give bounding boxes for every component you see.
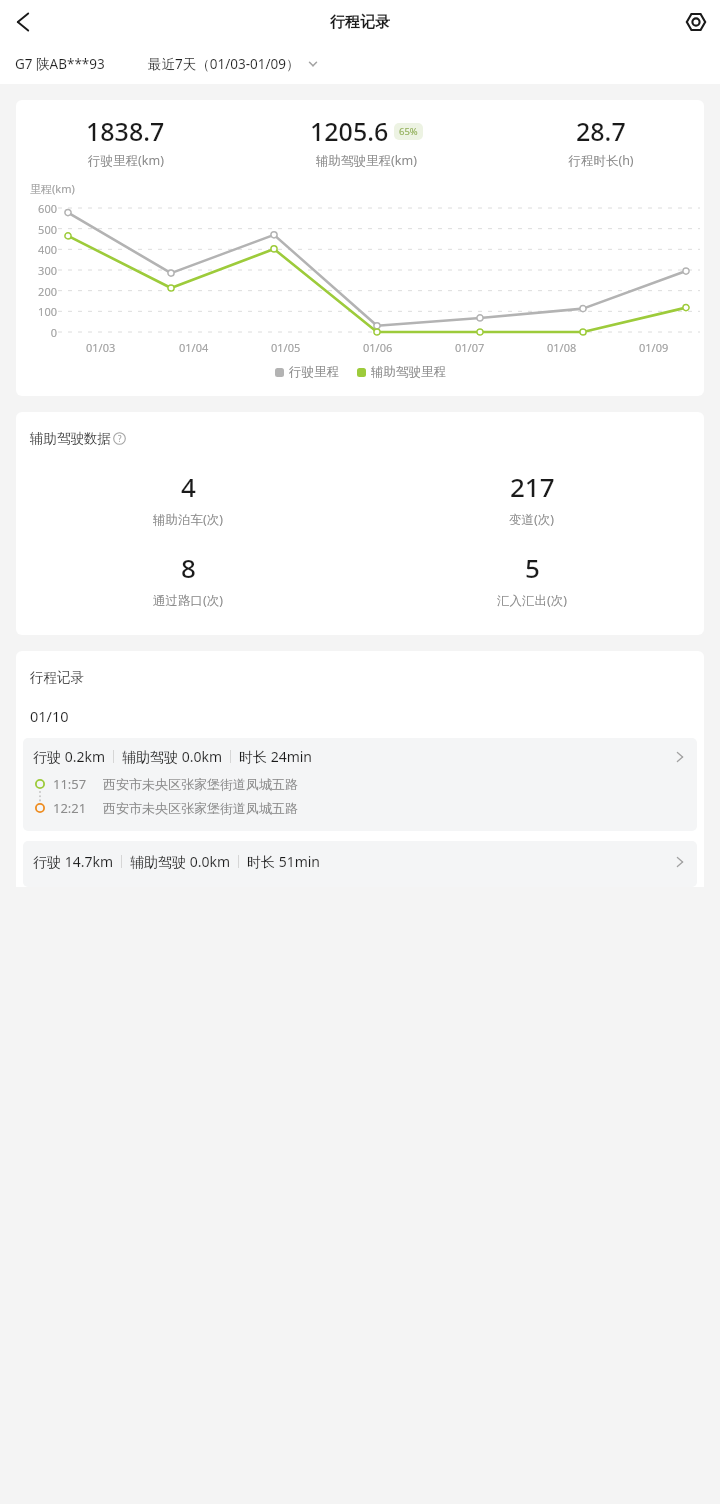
staticText: 行驶里程	[289, 364, 339, 380]
staticText: 行程记录	[30, 669, 84, 686]
staticText: 01/03	[86, 340, 116, 355]
staticText: 01/05	[271, 340, 301, 355]
staticText: 行驶 0.2km	[33, 747, 105, 766]
staticText: 时长 24min	[239, 747, 313, 766]
staticText: 最近7天（01/03-01/09）	[148, 55, 300, 73]
staticText: 600	[24, 201, 57, 216]
staticText: 行程时长(h)	[568, 152, 634, 169]
staticText: 01/06	[363, 340, 393, 355]
staticText: 01/04	[179, 340, 209, 355]
staticText: 1838.7	[86, 114, 165, 148]
staticText: 变道(次)	[509, 511, 555, 528]
staticText: 辅助驾驶里程	[371, 364, 446, 380]
button[interactable]: Back	[8, 8, 36, 36]
staticText: 行驶里程(km)	[88, 152, 164, 169]
staticText: 里程(km)	[30, 181, 75, 196]
staticText: 时长 51min	[247, 852, 321, 871]
staticText: 西安市未央区张家堡街道凤城五路	[103, 776, 298, 792]
staticText: G7 陕AB***93	[15, 55, 105, 73]
staticText: 8	[181, 550, 196, 585]
staticText: 200	[24, 284, 57, 299]
button[interactable]: 最近7天（01/03-01/09）	[148, 44, 720, 84]
staticText: 11:57	[53, 775, 87, 793]
button[interactable]: Info	[113, 432, 126, 445]
button[interactable]: 行驶 0.2km	[23, 738, 697, 831]
staticText: 01/09	[639, 340, 669, 355]
staticText: 辅助驾驶里程(km)	[316, 152, 417, 169]
staticText: 1205.6	[310, 114, 389, 148]
staticText: 28.7	[576, 114, 626, 148]
staticText: 100	[24, 304, 57, 319]
staticText: 辅助驾驶 0.0km	[130, 852, 230, 871]
staticText: 通过路口(次)	[153, 592, 224, 609]
staticText: 01/07	[455, 340, 485, 355]
staticText: 400	[24, 242, 57, 257]
staticText: 01/08	[547, 340, 577, 355]
staticText: 辅助驾驶 0.0km	[122, 747, 222, 766]
staticText: 5	[525, 550, 540, 585]
staticText: 217	[510, 469, 555, 504]
staticText: 0	[24, 325, 57, 340]
staticText: 65%	[399, 125, 418, 138]
staticText: 01/10	[30, 706, 69, 726]
staticText: ?	[118, 433, 122, 444]
staticText: 行驶 14.7km	[33, 852, 113, 871]
staticText: 300	[24, 263, 57, 278]
staticText: 行程记录	[330, 13, 390, 32]
staticText: 辅助泊车(次)	[153, 511, 224, 528]
staticText: 汇入汇出(次)	[497, 592, 568, 609]
button[interactable]: Settings	[682, 8, 710, 36]
button[interactable]: 行驶 14.7km	[23, 841, 697, 887]
button[interactable]: G7 陕AB***93	[0, 44, 148, 84]
staticText: 500	[24, 222, 57, 237]
staticText: 辅助驾驶数据	[30, 430, 111, 447]
staticText: 12:21	[53, 799, 87, 817]
staticText: 西安市未央区张家堡街道凤城五路	[103, 800, 298, 816]
staticText: 4	[181, 469, 196, 504]
